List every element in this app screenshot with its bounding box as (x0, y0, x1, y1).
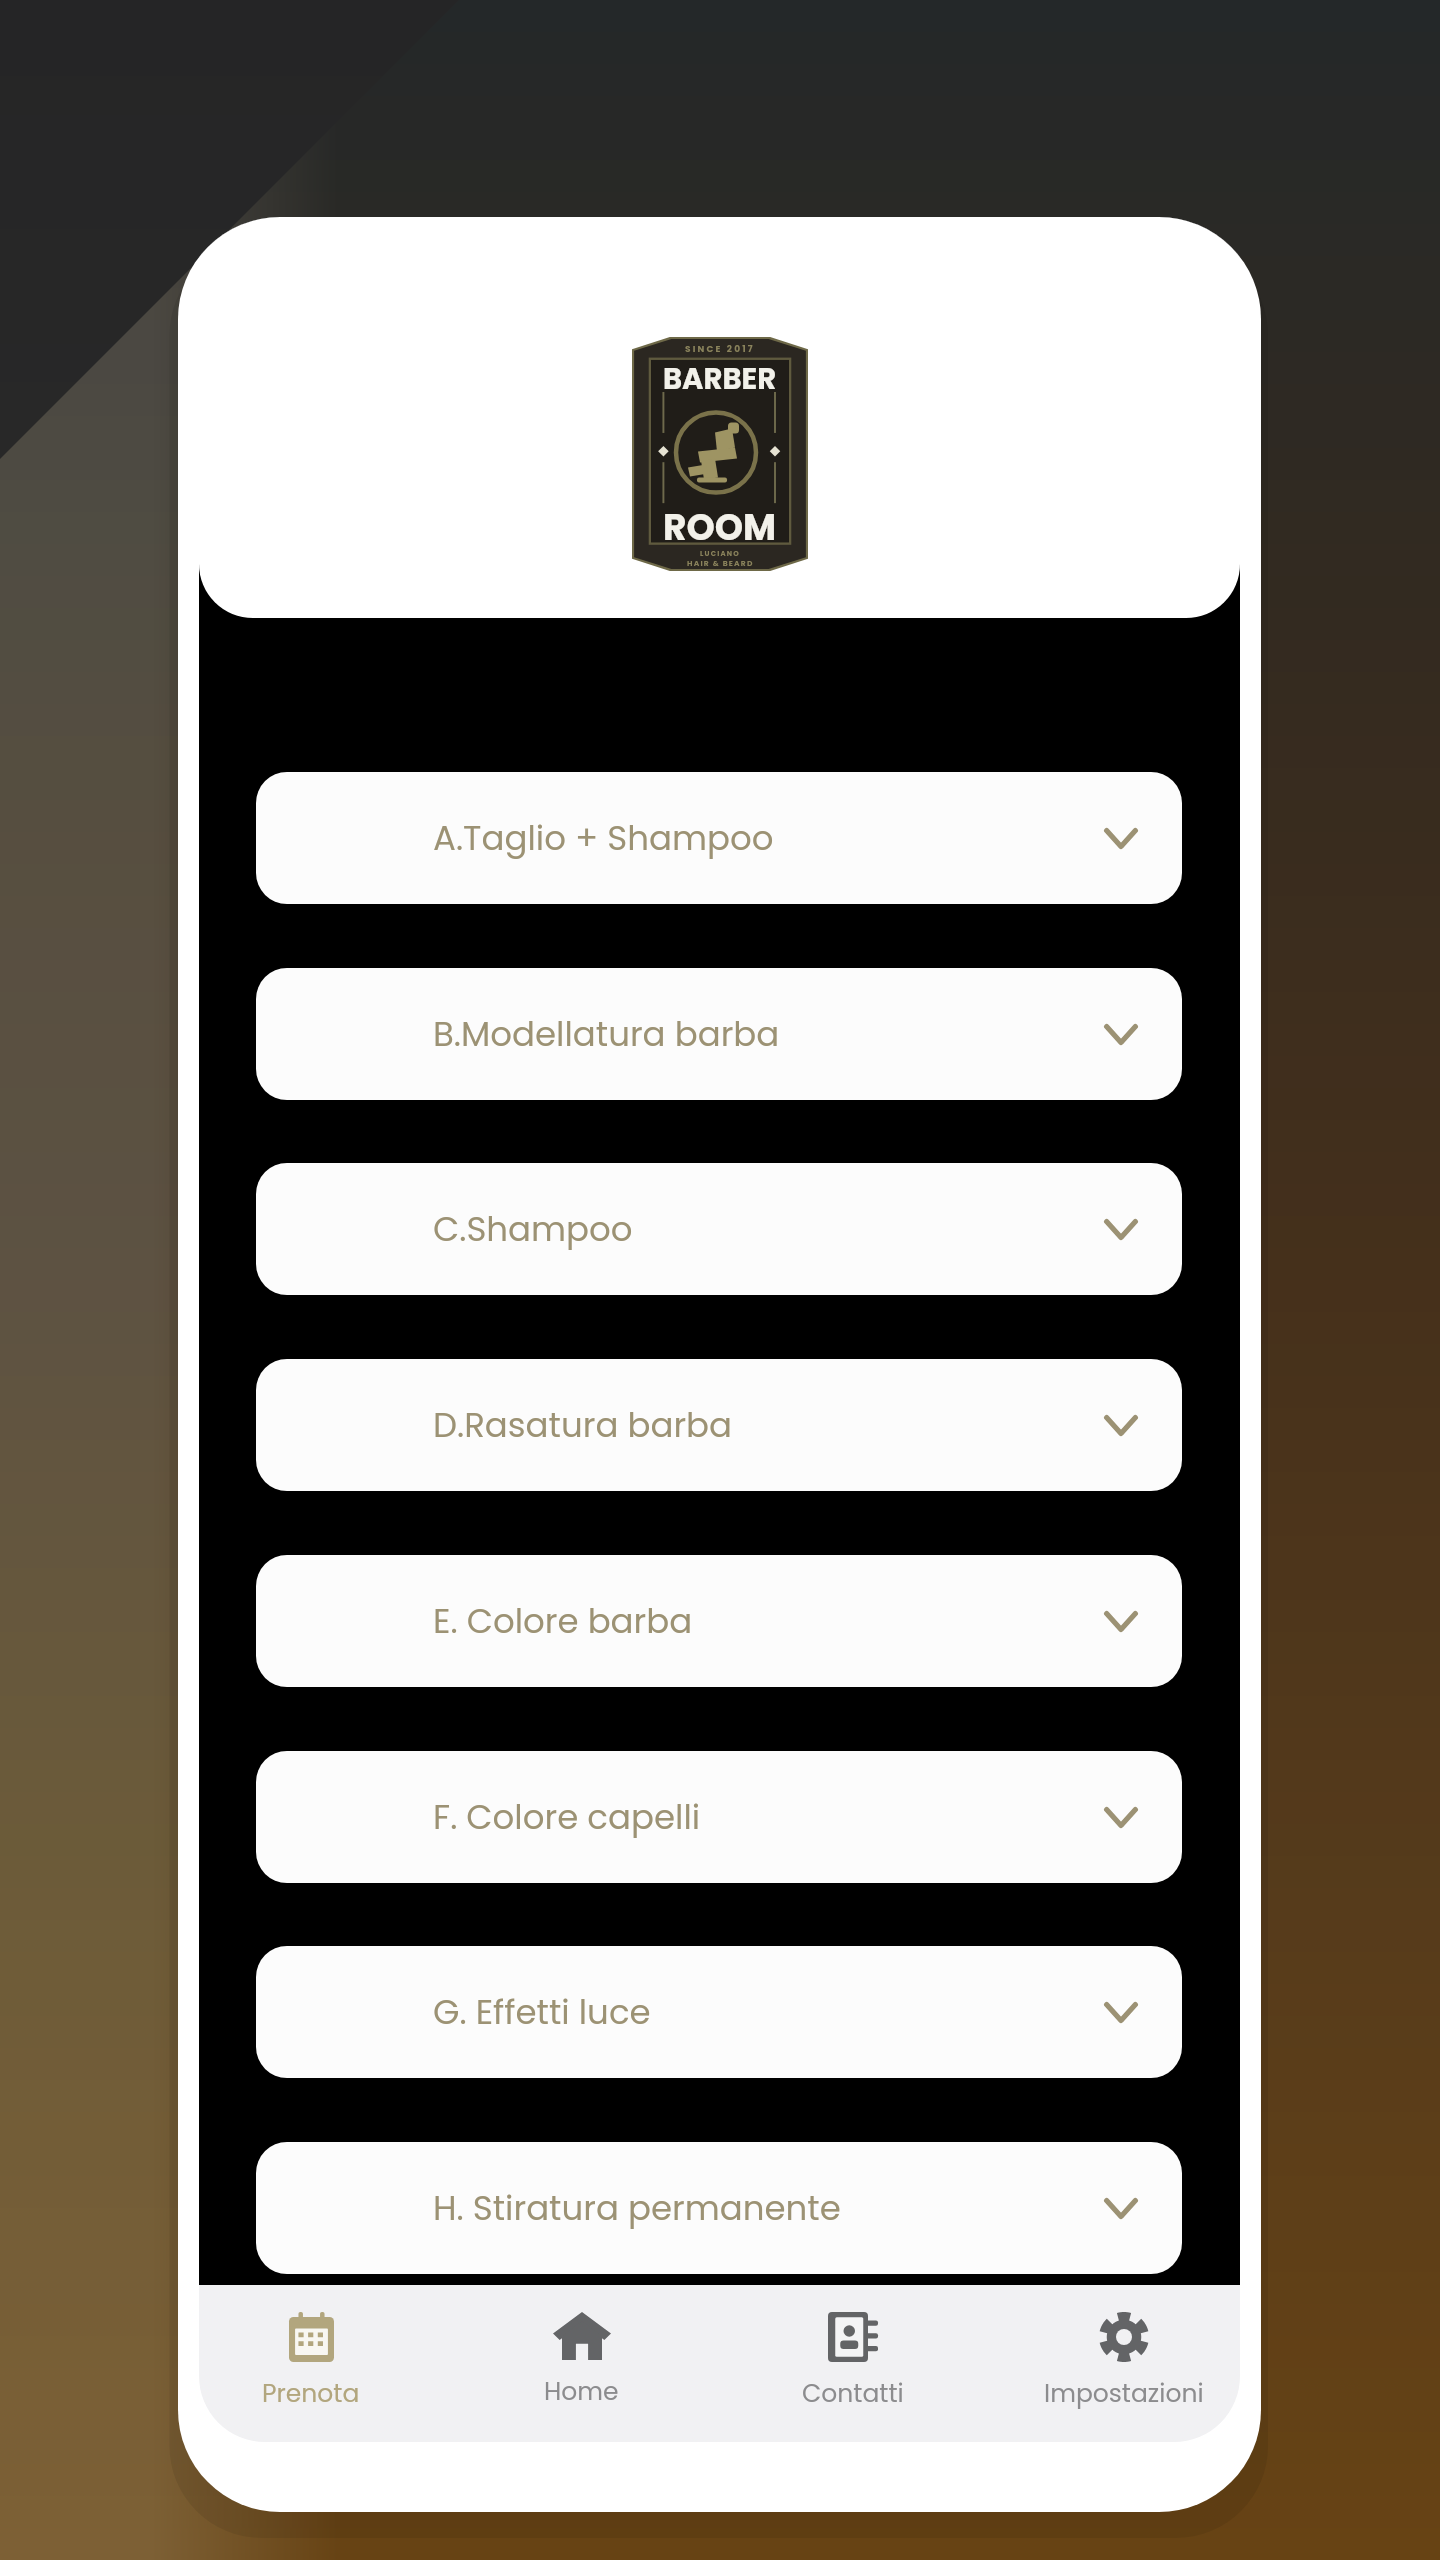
staticText: BARBER (663, 359, 777, 400)
button[interactable]: Prenota (178, 2285, 446, 2442)
button[interactable]: E. Colore barba (256, 1555, 1182, 1687)
staticText: Home (544, 2374, 619, 2409)
other: Impostazioni (1099, 2312, 1149, 2362)
button[interactable]: C.Shampoo (256, 1163, 1182, 1295)
other: Contatti (828, 2312, 878, 2362)
button[interactable]: G. Effetti luce (256, 1946, 1182, 2078)
staticText: ROOM (663, 502, 777, 552)
staticText: LUCIANO (700, 549, 740, 559)
staticText: A.Taglio + Shampoo (433, 814, 774, 862)
button[interactable]: H. Stiratura permanente (256, 2142, 1182, 2274)
other: Home (553, 2312, 611, 2360)
staticText: F. Colore capelli (433, 1793, 701, 1841)
staticText: D.Rasatura barba (433, 1401, 733, 1449)
button[interactable]: A.Taglio + Shampoo (256, 772, 1182, 904)
button[interactable]: Impostazioni (988, 2285, 1259, 2442)
staticText: Contatti (802, 2376, 904, 2411)
button[interactable]: D.Rasatura barba (256, 1359, 1182, 1491)
staticText: Prenota (262, 2376, 360, 2411)
staticText: H. Stiratura permanente (433, 2184, 841, 2232)
other: Prenota (289, 2312, 334, 2362)
staticText: SINCE 2017 (685, 343, 755, 356)
staticText: B.Modellatura barba (433, 1010, 780, 1058)
staticText: C.Shampoo (433, 1205, 633, 1253)
staticText: Impostazioni (1044, 2376, 1204, 2411)
staticText: HAIR & BEARD (687, 558, 754, 568)
staticText: E. Colore barba (433, 1597, 693, 1645)
button[interactable]: Contatti (717, 2285, 988, 2442)
button[interactable]: B.Modellatura barba (256, 968, 1182, 1100)
button[interactable]: Home (446, 2285, 717, 2442)
button[interactable]: F. Colore capelli (256, 1751, 1182, 1883)
staticText: G. Effetti luce (433, 1988, 651, 2036)
